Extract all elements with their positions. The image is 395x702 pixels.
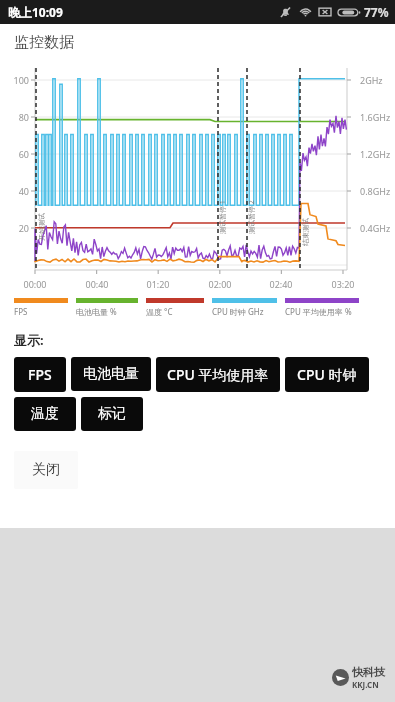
staticText: CPU 平均使用率 % xyxy=(285,306,352,317)
staticText: 100 xyxy=(5,74,29,86)
staticText: 00:40 xyxy=(82,278,112,290)
staticText: 开始测试 xyxy=(37,213,46,241)
staticText: 标记 xyxy=(98,405,126,423)
staticText: 1.6GHz xyxy=(360,111,391,123)
staticText: 快科技 xyxy=(352,665,385,679)
staticText: 监控数据 xyxy=(14,33,74,52)
staticText: 显示: xyxy=(14,331,44,349)
staticText: 0.8GHz xyxy=(360,185,391,197)
button[interactable]: 关闭 xyxy=(14,451,78,489)
staticText: 2GHz xyxy=(360,74,383,86)
button[interactable]: 标记 xyxy=(81,397,143,431)
button[interactable]: CPU 平均使用率 xyxy=(156,357,280,392)
staticText: 02:00 xyxy=(205,278,235,290)
staticText: 77% xyxy=(364,4,389,20)
staticText: 电池电量 % xyxy=(76,306,117,317)
staticText: 1.2GHz xyxy=(360,148,391,160)
staticText: KKJ.CN xyxy=(352,679,379,690)
staticText: 温度 xyxy=(31,405,59,423)
staticText: 00:00 xyxy=(20,278,50,290)
staticText: 测试暂停 1 xyxy=(218,200,228,234)
staticText: 20 xyxy=(5,222,29,234)
button[interactable]: 电池电量 xyxy=(71,357,151,391)
staticText: 03:20 xyxy=(328,278,358,290)
staticText: 测试暂停 2 xyxy=(247,200,257,234)
staticText: 晚上10:09 xyxy=(8,4,63,20)
staticText: 温度 °C xyxy=(146,306,173,317)
staticText: CPU 时钟 xyxy=(297,365,357,384)
staticText: FPS xyxy=(14,306,28,317)
button[interactable]: 温度 xyxy=(14,397,76,431)
staticText: FPS xyxy=(28,365,52,384)
staticText: CPU 时钟 GHz xyxy=(212,306,264,317)
staticText: 02:40 xyxy=(266,278,296,290)
staticText: 结束测试 xyxy=(301,218,310,246)
staticText: 关闭 xyxy=(32,461,60,479)
staticText: 电池电量 xyxy=(83,365,139,383)
staticText: CPU 平均使用率 xyxy=(167,365,269,384)
staticText: 40 xyxy=(5,185,29,197)
staticText: 80 xyxy=(5,111,29,123)
staticText: 60 xyxy=(5,148,29,160)
staticText: 0.4GHz xyxy=(360,222,391,234)
staticText: 01:20 xyxy=(143,278,173,290)
button[interactable]: CPU 时钟 xyxy=(285,357,369,392)
button[interactable]: FPS xyxy=(14,357,66,392)
